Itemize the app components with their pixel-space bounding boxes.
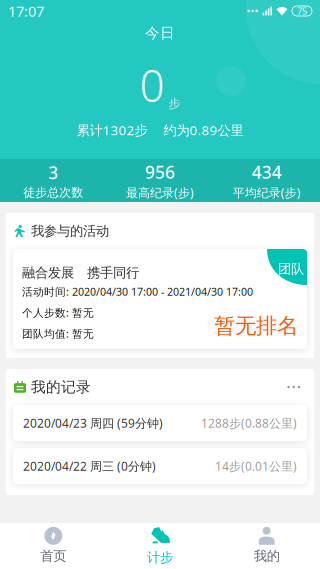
staticText: 我参与的活动 <box>31 223 109 239</box>
button[interactable]: 我的 <box>213 522 320 569</box>
staticText: 团队 <box>278 261 304 277</box>
staticText: 约为0.89公里 <box>163 121 243 139</box>
button[interactable]: 计步 <box>107 522 213 569</box>
staticText: 累计1302步 <box>76 121 147 139</box>
staticText: 徒步总次数 <box>23 185 83 200</box>
button[interactable]: 2020/04/23 周四 (59分钟) <box>13 405 307 441</box>
staticText: 最高纪录(步) <box>126 184 194 200</box>
staticText: 我的 <box>254 548 280 564</box>
staticText: 我的记录 <box>31 378 91 396</box>
staticText: 3 <box>48 161 58 184</box>
button[interactable]: 2020/04/22 周三 (0分钟) <box>13 448 307 484</box>
staticText: 团队均值: 暂无 <box>22 326 94 341</box>
staticText: ••• <box>247 4 259 18</box>
button[interactable]: 融合发展 携手同行 <box>13 249 307 349</box>
staticText: 0 <box>139 56 164 114</box>
staticText: 2020/04/22 周三 (0分钟) <box>23 458 156 474</box>
staticText: 步 <box>168 96 180 111</box>
staticText: 956 <box>145 160 175 183</box>
staticText: 1288步(0.88公里) <box>201 415 297 431</box>
staticText: 今日 <box>145 24 175 42</box>
button[interactable]: 首页 <box>0 522 107 569</box>
staticText: 17:07 <box>8 1 44 21</box>
staticText: 2020/04/23 周四 (59分钟) <box>23 415 163 431</box>
staticText: 首页 <box>40 548 66 564</box>
button[interactable]: More options <box>279 378 308 396</box>
staticText: 14步(0.01公里) <box>215 458 297 474</box>
staticText: 434 <box>252 160 282 183</box>
staticText: 暂无排名 <box>214 313 298 339</box>
staticText: 计步 <box>147 549 173 566</box>
staticText: 平均纪录(步) <box>233 184 301 200</box>
staticText: 75 <box>297 5 307 17</box>
staticText: 活动时间: 2020/04/30 17:00 - 2021/04/30 17:0… <box>22 284 253 299</box>
staticText: 个人步数: 暂无 <box>22 305 94 320</box>
staticText: 融合发展 携手同行 <box>22 265 139 281</box>
